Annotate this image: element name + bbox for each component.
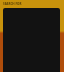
staticText: SEARCH FOR: [3, 2, 22, 6]
